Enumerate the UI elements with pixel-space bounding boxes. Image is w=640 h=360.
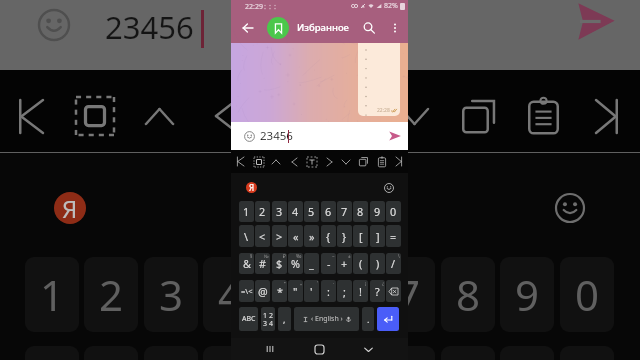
- button[interactable]: [386, 280, 401, 302]
- button[interactable]: ,: [278, 307, 291, 331]
- button[interactable]: Select all: [250, 150, 267, 173]
- staticText: 22:28: [377, 107, 390, 114]
- button[interactable]: «: [288, 225, 303, 247]
- button[interactable]: 3: [272, 201, 287, 222]
- staticText: /: [391, 256, 396, 271]
- button[interactable]: Enter: [377, 307, 399, 331]
- staticText: [: [359, 229, 363, 244]
- button[interactable]: 9: [370, 201, 385, 222]
- button[interactable]: <: [255, 225, 270, 247]
- staticText: 8: [456, 266, 481, 323]
- staticText: #: [259, 256, 266, 271]
- staticText: {: [326, 229, 331, 244]
- button[interactable]: :: [321, 280, 336, 302]
- staticText: 9: [374, 204, 381, 219]
- staticText: ': [310, 284, 313, 299]
- button[interactable]: »: [304, 225, 319, 247]
- staticText: ?: [375, 284, 380, 299]
- button[interactable]: Move left: [286, 150, 303, 173]
- button[interactable]: Emoji: [383, 182, 394, 193]
- button[interactable]: Select text: [303, 150, 320, 173]
- button[interactable]: $: [272, 253, 287, 274]
- button[interactable]: Move to start: [232, 150, 249, 173]
- button[interactable]: 4: [288, 201, 303, 222]
- staticText: 82%: [384, 1, 398, 11]
- button[interactable]: *: [272, 280, 287, 302]
- button[interactable]: Back: [237, 17, 258, 38]
- staticText: ]: [376, 229, 380, 244]
- button[interactable]: #: [255, 253, 270, 274]
- button[interactable]: Home: [309, 338, 329, 360]
- button[interactable]: Copy: [355, 150, 372, 173]
- button[interactable]: ‹ English ›: [294, 307, 359, 331]
- button[interactable]: [: [353, 225, 368, 247]
- button[interactable]: Move down: [337, 150, 354, 173]
- staticText: »: [309, 229, 315, 244]
- button[interactable]: 8: [353, 201, 368, 222]
- button[interactable]: }: [337, 225, 352, 247]
- staticText: \: [244, 229, 249, 244]
- button[interactable]: Send: [386, 127, 404, 145]
- button[interactable]: =\<: [239, 280, 254, 302]
- staticText: ·: [333, 280, 335, 286]
- staticText: 1: [40, 266, 65, 323]
- button[interactable]: (: [353, 253, 368, 274]
- staticText: =\<: [241, 286, 253, 296]
- button[interactable]: 1 2 3 4: [261, 307, 275, 331]
- button[interactable]: 0: [386, 201, 401, 222]
- button[interactable]: =: [386, 225, 401, 247]
- button[interactable]: &: [239, 253, 254, 274]
- staticText: Я: [249, 182, 255, 193]
- button[interactable]: -: [321, 253, 336, 274]
- button[interactable]: Move right: [321, 150, 338, 173]
- staticText: ¡: [365, 280, 367, 286]
- staticText: (: [359, 256, 363, 271]
- button[interactable]: Yandex: [246, 182, 257, 193]
- button[interactable]: @: [255, 280, 270, 302]
- button[interactable]: ': [304, 280, 319, 302]
- button[interactable]: Emoji: [241, 128, 257, 144]
- staticText: ,: [283, 313, 286, 325]
- button[interactable]: .: [362, 307, 374, 331]
- staticText: !: [359, 284, 362, 299]
- button[interactable]: 2: [255, 201, 270, 222]
- button[interactable]: \: [239, 225, 254, 247]
- staticText: №: [264, 253, 269, 259]
- staticText: Избранное: [297, 21, 349, 34]
- staticText: ‹ English ›: [311, 314, 343, 324]
- button[interactable]: Move up: [267, 150, 284, 173]
- button[interactable]: ]: [370, 225, 385, 247]
- staticText: §: [250, 253, 253, 259]
- button[interactable]: {: [321, 225, 336, 247]
- button[interactable]: ): [370, 253, 385, 274]
- button[interactable]: ;: [337, 280, 352, 302]
- staticText: ABC: [242, 314, 256, 324]
- staticText: 1: [243, 204, 250, 219]
- button[interactable]: _: [304, 253, 319, 274]
- button[interactable]: More options: [386, 19, 404, 37]
- button[interactable]: Hide keyboard: [358, 338, 378, 360]
- button[interactable]: ABC: [239, 307, 258, 331]
- button[interactable]: Search: [358, 17, 379, 38]
- button[interactable]: /: [386, 253, 401, 274]
- button[interactable]: %: [288, 253, 303, 274]
- staticText: =: [390, 229, 397, 244]
- button[interactable]: 1: [239, 201, 254, 222]
- button[interactable]: +: [337, 253, 352, 274]
- button[interactable]: 7: [337, 201, 352, 222]
- button[interactable]: ?: [370, 280, 385, 302]
- button[interactable]: Paste: [373, 150, 390, 173]
- button[interactable]: Move to end: [390, 150, 407, 173]
- staticText: 7: [396, 266, 421, 323]
- staticText: $: [276, 256, 283, 271]
- button[interactable]: Recents: [260, 338, 280, 360]
- button[interactable]: 5: [304, 201, 319, 222]
- staticText: Я: [62, 192, 78, 224]
- button[interactable]: >: [272, 225, 287, 247]
- button[interactable]: !: [353, 280, 368, 302]
- button[interactable]: ": [288, 280, 303, 302]
- button[interactable]: 6: [321, 201, 336, 222]
